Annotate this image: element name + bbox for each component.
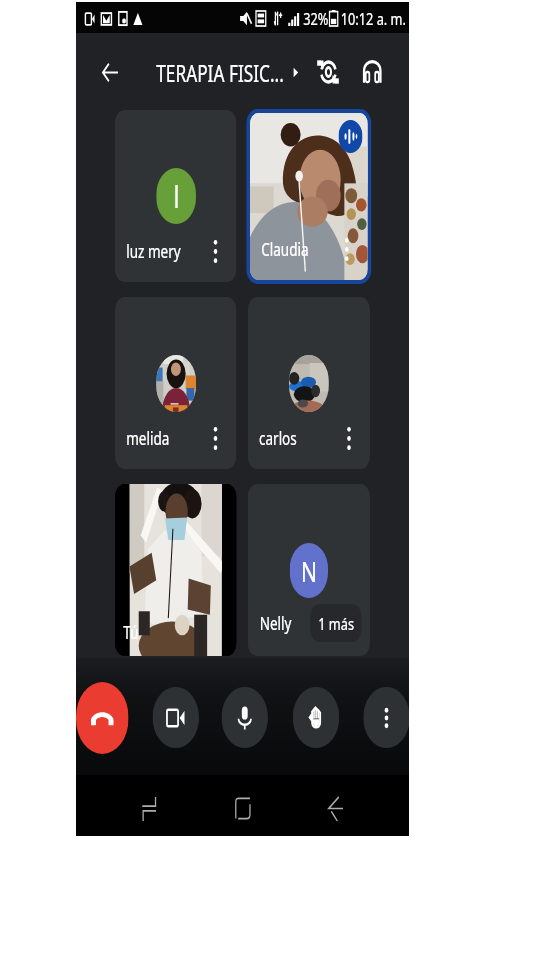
button[interactable]: Recent apps bbox=[125, 778, 172, 836]
button[interactable]: Mute microphone bbox=[221, 687, 268, 748]
staticText: l bbox=[173, 175, 179, 217]
button[interactable]: l bbox=[115, 110, 236, 282]
staticText: 1 más bbox=[318, 612, 354, 635]
button[interactable]: Turn off camera bbox=[152, 687, 199, 748]
staticText: Nelly bbox=[260, 611, 292, 636]
button[interactable]: Switch camera bbox=[311, 50, 344, 94]
button[interactable]: Audio output bbox=[356, 50, 389, 94]
button[interactable]: Tú bbox=[115, 484, 236, 656]
button[interactable]: More options for luz mery bbox=[203, 236, 228, 266]
button[interactable]: More options for Claudia bbox=[334, 234, 359, 264]
button[interactable]: N bbox=[248, 484, 370, 656]
staticText: carlos bbox=[259, 426, 297, 451]
button[interactable]: Home bbox=[219, 778, 266, 836]
staticText: luz mery bbox=[126, 239, 181, 264]
button[interactable]: Back bbox=[312, 778, 359, 836]
button[interactable]: More options bbox=[363, 687, 409, 748]
staticText: melida bbox=[126, 426, 170, 451]
button[interactable]: TERAPIA FISIC... bbox=[156, 44, 300, 100]
button[interactable]: Claudia bbox=[250, 113, 368, 280]
button[interactable]: More options for carlos bbox=[336, 423, 362, 453]
staticText: 32% bbox=[303, 7, 329, 30]
button[interactable]: 1 más bbox=[310, 604, 362, 642]
button[interactable]: More options for melida bbox=[203, 423, 228, 453]
staticText: N bbox=[301, 552, 317, 590]
staticText: Claudia bbox=[261, 237, 309, 262]
button[interactable]: melida bbox=[115, 297, 236, 469]
staticText: 10:12 a. m. bbox=[341, 7, 406, 30]
button[interactable]: Raise hand bbox=[293, 687, 339, 748]
button[interactable]: End call bbox=[76, 682, 128, 754]
staticText: TERAPIA FISIC... bbox=[156, 57, 285, 88]
button[interactable]: Back bbox=[93, 50, 126, 94]
staticText: Tú bbox=[123, 620, 139, 645]
button[interactable]: carlos bbox=[248, 297, 370, 469]
